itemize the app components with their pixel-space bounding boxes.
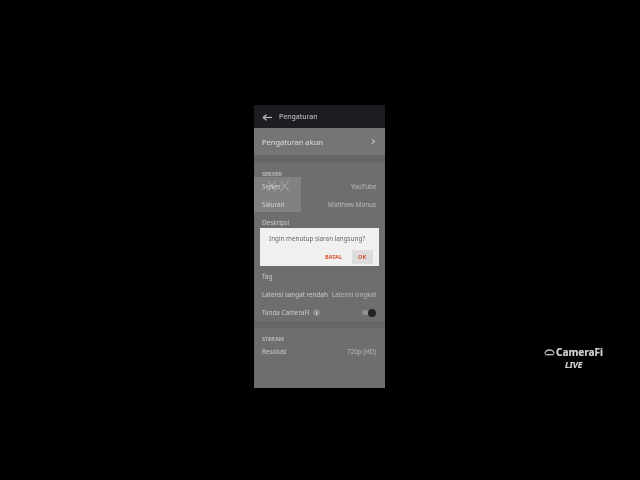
button[interactable]: Pengaturan akun xyxy=(254,128,385,155)
staticText: BATAL xyxy=(325,253,343,261)
staticText: Pengaturan xyxy=(279,112,318,122)
button[interactable]: Saluran xyxy=(254,195,385,213)
button[interactable]: Tag xyxy=(254,267,385,285)
staticText: Tanda CameraFi xyxy=(262,308,310,317)
staticText: Deskripsi xyxy=(262,218,290,227)
staticText: Ingin menutup siaran langsung? xyxy=(269,234,365,243)
button[interactable]: OK xyxy=(352,250,373,264)
staticText: Tag xyxy=(262,272,273,281)
staticText: 720p (HD) xyxy=(347,347,377,356)
staticText: Latensi singkat xyxy=(332,290,377,299)
staticText: Resolusi xyxy=(262,347,287,356)
staticText: Latensi sangat rendah xyxy=(262,290,328,299)
button[interactable]: Tanda CameraFi xyxy=(254,303,385,321)
staticText: STREAM xyxy=(262,335,284,342)
button[interactable]: Latensi sangat rendah xyxy=(254,285,385,303)
staticText: Pengaturan akun xyxy=(262,137,323,147)
staticText: Server xyxy=(262,182,281,191)
staticText: OK xyxy=(358,253,367,261)
staticText: Saluran xyxy=(262,200,285,209)
staticText: Privasi xyxy=(262,236,282,245)
staticText: LIVE xyxy=(565,359,583,371)
staticText: i xyxy=(316,310,318,316)
staticText: YouTube xyxy=(351,182,377,191)
staticText: SERVER xyxy=(262,170,282,177)
button[interactable]: BATAL xyxy=(320,250,348,264)
button[interactable]: Back xyxy=(260,110,274,124)
button[interactable]: Privasi xyxy=(254,231,385,249)
button[interactable]: Resolusi xyxy=(254,342,385,360)
staticText: Hiburan xyxy=(353,254,377,263)
staticText: Matthew Monus xyxy=(328,200,377,209)
staticText: CameraFi xyxy=(556,345,603,359)
button[interactable]: Server xyxy=(254,177,385,195)
button[interactable]: Toggle CameraFi watermark xyxy=(361,308,377,317)
button[interactable]: Deskripsi xyxy=(254,213,385,231)
staticText: Publik xyxy=(358,236,377,245)
button[interactable]: Kategori xyxy=(254,249,385,267)
